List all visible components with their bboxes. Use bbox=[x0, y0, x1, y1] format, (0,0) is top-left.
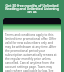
staticText: Get 30 free months of Unlimited Reading … bbox=[3, 3, 61, 14]
staticText: Terms and conditions apply to this limit… bbox=[5, 33, 59, 72]
